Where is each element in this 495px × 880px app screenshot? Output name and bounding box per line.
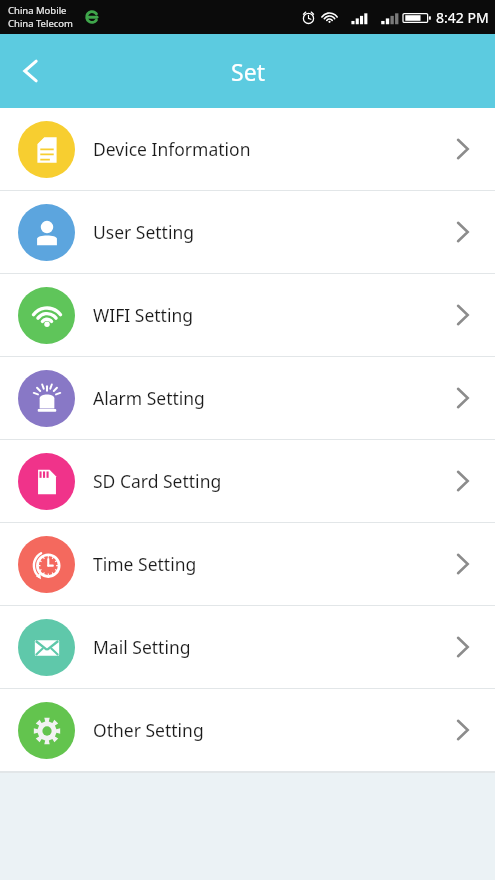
staticText: Other Setting <box>93 718 204 742</box>
staticText: User Setting <box>93 220 195 244</box>
staticText: WIFI Setting <box>93 303 193 327</box>
staticText: SD Card Setting <box>93 469 222 493</box>
button[interactable]: WIFI Setting <box>0 274 495 356</box>
staticText: Alarm Setting <box>93 386 205 410</box>
staticText: Mail Setting <box>93 635 191 659</box>
staticText: China Mobile <box>8 4 67 17</box>
staticText: Set <box>231 56 265 87</box>
staticText: 8:42 PM <box>436 8 489 27</box>
button[interactable]: Back <box>0 40 62 102</box>
staticText: Time Setting <box>93 552 197 576</box>
button[interactable]: Mail Setting <box>0 606 495 688</box>
staticText: China Telecom <box>8 17 73 30</box>
button[interactable]: Time Setting <box>0 523 495 605</box>
button[interactable]: Other Setting <box>0 689 495 771</box>
button[interactable]: User Setting <box>0 191 495 273</box>
button[interactable]: Alarm Setting <box>0 357 495 439</box>
staticText: Device Information <box>93 137 251 161</box>
button[interactable]: SD Card Setting <box>0 440 495 522</box>
button[interactable]: Device Information <box>0 108 495 190</box>
